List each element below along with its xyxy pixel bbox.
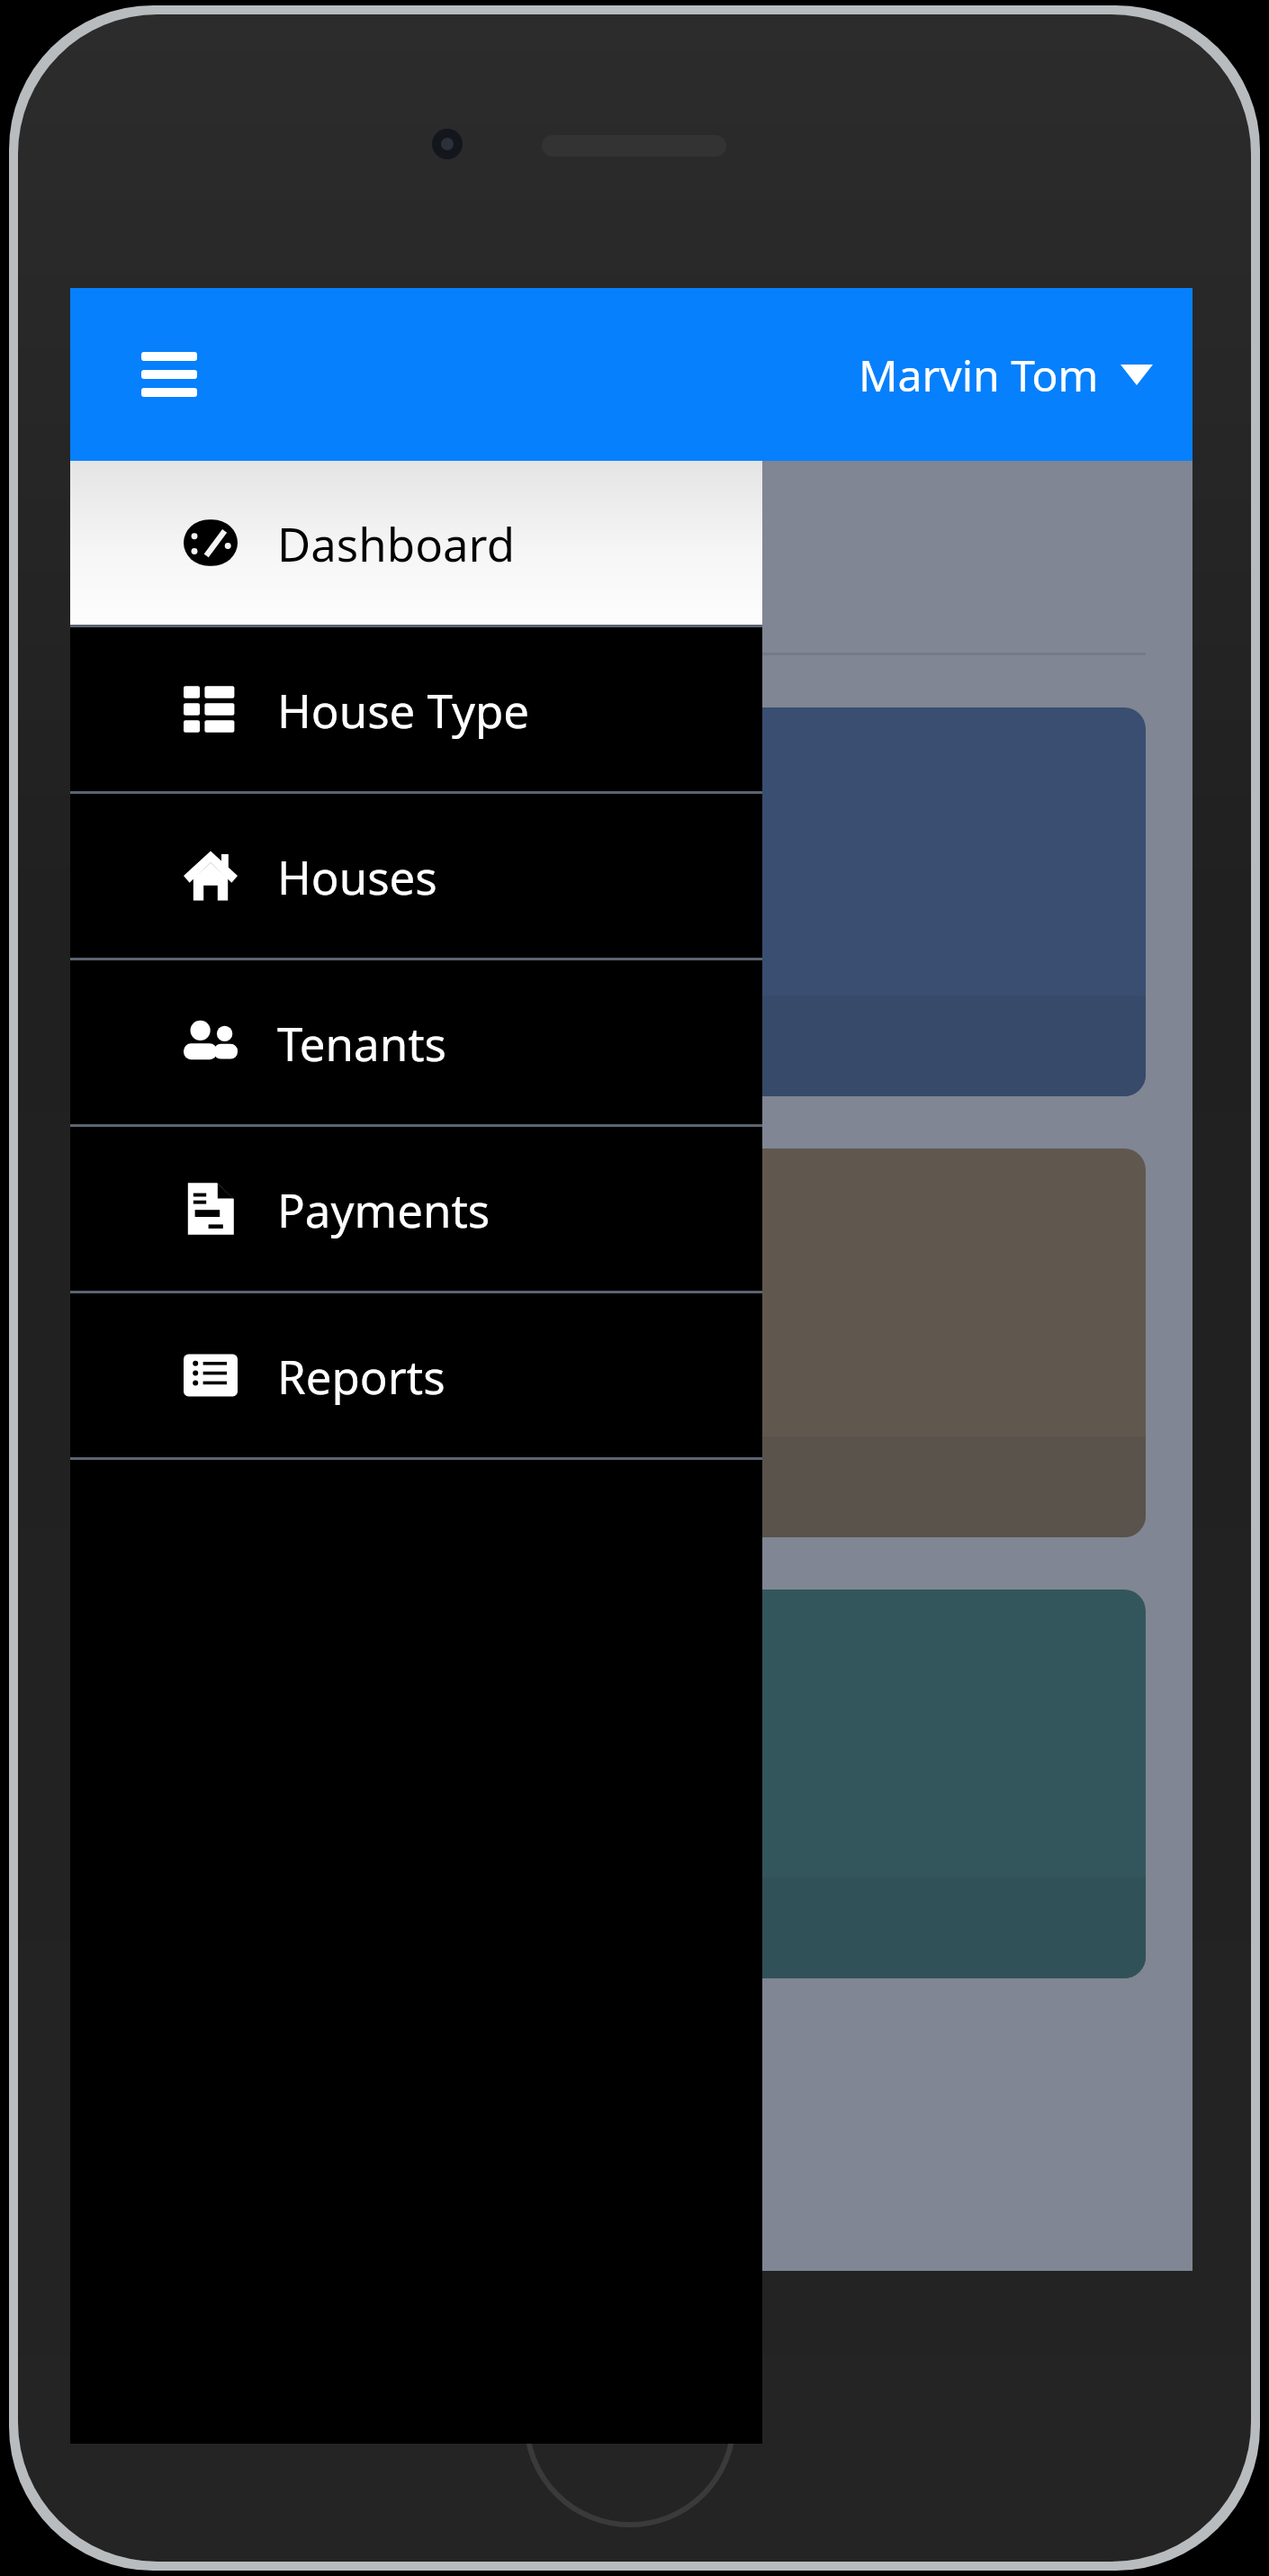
staticText: Tenants [277, 1012, 447, 1074]
staticText: House Type [277, 679, 530, 741]
staticText: Marvin Tom [859, 346, 1099, 404]
staticText: Dashboard [277, 512, 516, 574]
button[interactable]: Open navigation menu [122, 328, 216, 421]
button[interactable]: Marvin Tom [846, 333, 1165, 417]
button[interactable]: Dashboard [70, 461, 762, 625]
button[interactable]: Tenants [70, 960, 762, 1124]
button[interactable]: View List [117, 1148, 1146, 1537]
staticText: View List [151, 1015, 338, 1077]
staticText: Payments [277, 1178, 490, 1240]
button[interactable]: Houses [70, 794, 762, 958]
button[interactable]: View List [117, 707, 1146, 1096]
button[interactable]: House Type [70, 627, 762, 791]
staticText: Houses [277, 845, 437, 907]
button[interactable]: Reports [70, 1293, 762, 1457]
staticText: Welcome Marvin [117, 499, 627, 582]
button[interactable]: Payments [117, 1590, 1146, 1978]
staticText: View List [151, 1456, 338, 1518]
staticText: Reports [277, 1345, 445, 1407]
button[interactable]: Payments [70, 1127, 762, 1291]
